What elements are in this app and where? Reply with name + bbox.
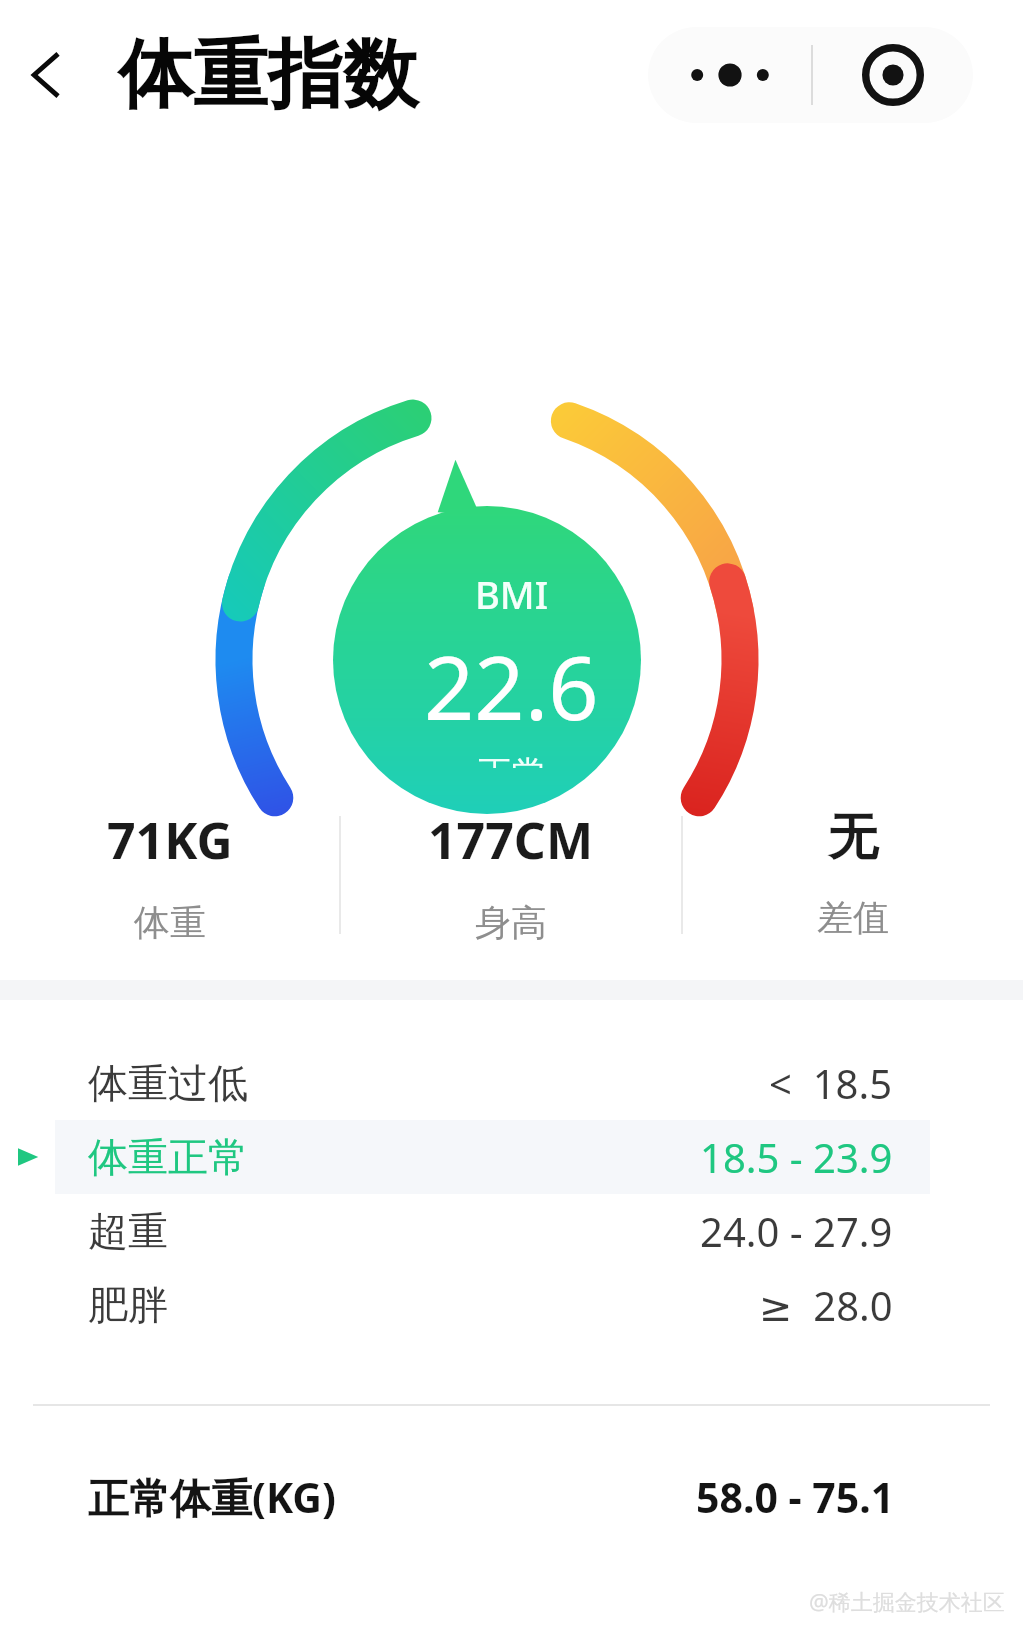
staticText: ≥ 28.0: [759, 1278, 893, 1332]
button[interactable]: 体重正常: [0, 1120, 1023, 1194]
staticText: 体重正常: [88, 1132, 248, 1182]
staticText: @稀土掘金技术社区: [809, 1586, 1005, 1616]
staticText: 差值: [817, 895, 889, 940]
staticText: 71KG: [107, 806, 233, 874]
staticText: < 18.5: [769, 1056, 893, 1110]
staticText: 超重: [88, 1206, 168, 1256]
staticText: 正常体重(KG): [88, 1469, 336, 1525]
staticText: 177CM: [428, 806, 594, 874]
button[interactable]: 超重: [0, 1194, 1023, 1268]
button[interactable]: 正常体重(KG): [0, 1454, 1023, 1540]
button[interactable]: 肥胖: [0, 1268, 1023, 1342]
button[interactable]: Back: [4, 32, 90, 118]
button[interactable]: 177CM: [341, 770, 681, 945]
staticText: 肥胖: [88, 1280, 168, 1330]
staticText: 24.0 - 27.9: [700, 1204, 893, 1258]
button[interactable]: 71KG: [0, 770, 339, 945]
staticText: 体重指数: [118, 28, 418, 122]
staticText: 无: [828, 806, 878, 869]
staticText: 18.5 - 23.9: [700, 1130, 893, 1184]
staticText: 体重过低: [88, 1058, 248, 1108]
button[interactable]: 体重过低: [0, 1046, 1023, 1120]
button[interactable]: More options: [648, 27, 973, 123]
staticText: 体重: [134, 900, 206, 945]
staticText: 22.6: [424, 626, 599, 746]
staticText: 58.0 - 75.1: [696, 1469, 895, 1525]
button[interactable]: 无: [683, 770, 1023, 940]
staticText: BMI: [475, 568, 549, 620]
staticText: 正常: [477, 752, 547, 768]
staticText: 身高: [475, 900, 547, 945]
